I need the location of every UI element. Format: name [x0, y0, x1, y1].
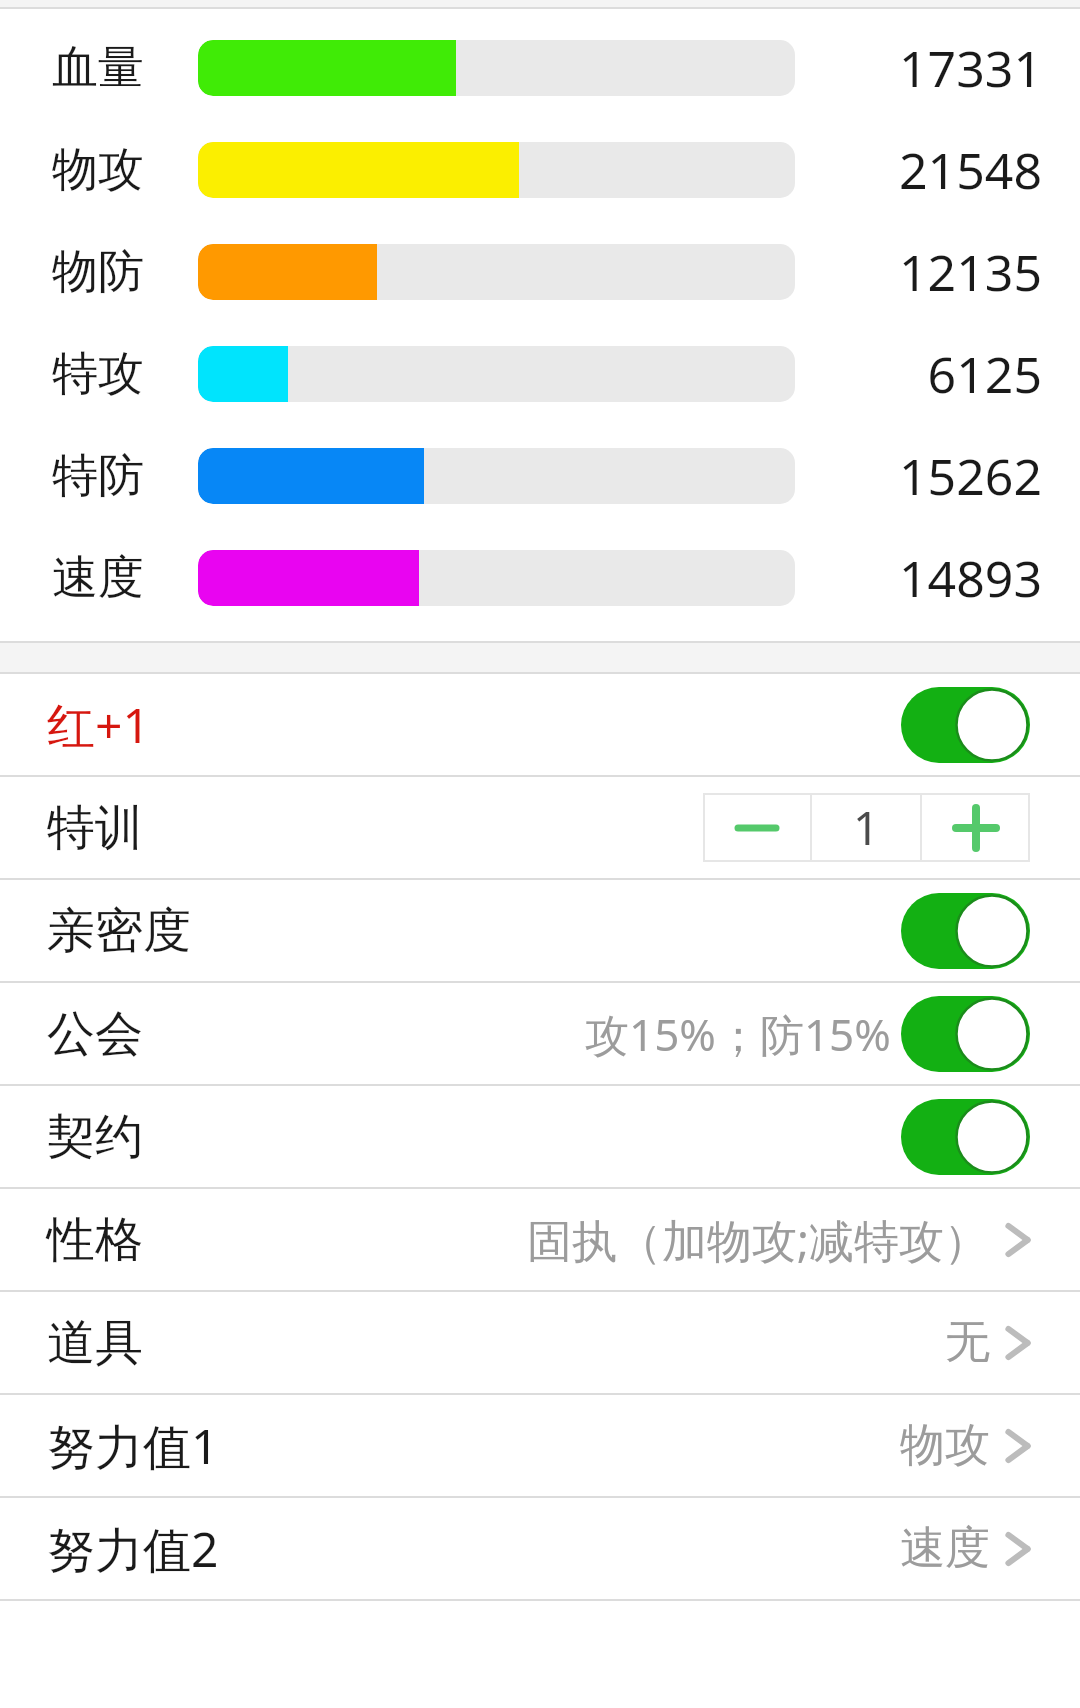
staticText: 无 [945, 1314, 990, 1371]
staticText: 物攻 [52, 141, 144, 199]
button[interactable]: 努力值2 [0, 1498, 1080, 1599]
button[interactable]: Toggle [901, 1099, 1030, 1175]
staticText: 性格 [47, 1210, 143, 1270]
staticText: 6125 [927, 340, 1042, 408]
staticText: 努力值1 [47, 1413, 219, 1479]
button[interactable]: Toggle [901, 687, 1030, 763]
button[interactable]: 努力值1 [0, 1395, 1080, 1496]
staticText: 17331 [899, 34, 1042, 102]
button[interactable]: 速度 [0, 527, 1080, 629]
staticText: 亲密度 [47, 901, 191, 961]
button[interactable]: 亲密度 [0, 880, 1080, 981]
button[interactable]: 契约 [0, 1086, 1080, 1187]
button[interactable]: 公会 [0, 983, 1080, 1084]
staticText: 物防 [52, 243, 144, 301]
button[interactable]: 性格 [0, 1189, 1080, 1290]
button[interactable]: Toggle [901, 996, 1030, 1072]
staticText: 速度 [52, 549, 144, 607]
staticText: 特防 [52, 447, 144, 505]
staticText: 血量 [52, 39, 144, 97]
button[interactable]: 血量 [0, 17, 1080, 119]
button[interactable]: 物攻 [0, 119, 1080, 221]
staticText: 道具 [47, 1313, 143, 1373]
button[interactable]: 特攻 [0, 323, 1080, 425]
staticText: 攻15%；防15% [585, 1004, 891, 1064]
button[interactable]: 物防 [0, 221, 1080, 323]
button[interactable]: Decrease [703, 793, 810, 862]
staticText: 契约 [47, 1107, 143, 1167]
staticText: 速度 [900, 1520, 990, 1577]
staticText: 12135 [899, 238, 1042, 306]
staticText: 特攻 [52, 345, 144, 403]
button[interactable]: Increase [922, 793, 1030, 862]
button[interactable]: 道具 [0, 1292, 1080, 1393]
staticText: 特训 [47, 798, 143, 858]
staticText: 固执（加物攻;减特攻） [527, 1209, 990, 1270]
staticText: 15262 [899, 442, 1042, 510]
staticText: 公会 [47, 1004, 143, 1064]
staticText: 14893 [899, 544, 1042, 612]
staticText: 红+1 [47, 692, 150, 758]
staticText: 努力值2 [47, 1516, 219, 1582]
staticText: 物攻 [900, 1417, 990, 1474]
button[interactable]: 特防 [0, 425, 1080, 527]
staticText: 21548 [899, 136, 1042, 204]
button[interactable]: 特训 [0, 777, 1080, 878]
staticText: 1 [853, 796, 880, 859]
button[interactable]: 红+1 [0, 674, 1080, 775]
button[interactable]: Toggle [901, 893, 1030, 969]
